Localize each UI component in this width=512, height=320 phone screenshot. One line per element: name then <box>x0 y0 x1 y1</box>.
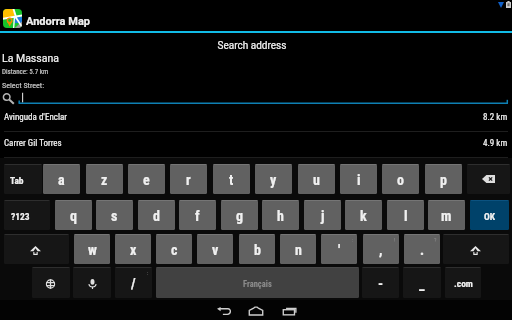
button[interactable]: p <box>425 164 462 194</box>
staticText: Avinguda d'Enclar <box>4 112 68 123</box>
staticText: f <box>195 208 200 224</box>
button[interactable]: u <box>298 164 335 194</box>
button[interactable]: a <box>43 164 80 194</box>
staticText: ! <box>394 236 396 243</box>
staticText: a <box>58 172 65 188</box>
button[interactable]: Carrer Gil Torres <box>0 132 512 158</box>
staticText: Andorra Map <box>26 15 90 28</box>
staticText: La Massana <box>2 52 59 64</box>
button[interactable]: ?123 <box>4 200 50 230</box>
button[interactable]: Shift <box>4 234 69 264</box>
staticText: x <box>130 242 137 258</box>
button[interactable]: Avinguda d'Enclar <box>0 106 512 132</box>
button[interactable]: e <box>128 164 165 194</box>
staticText: p <box>440 172 447 188</box>
staticText: Distance: 5.7 km <box>2 68 49 76</box>
staticText: u <box>313 172 320 188</box>
button[interactable]: f <box>179 200 216 230</box>
button[interactable]: Tab <box>4 164 42 194</box>
button[interactable]: Home <box>240 300 272 320</box>
staticText: c <box>171 242 178 258</box>
button[interactable]: r <box>170 164 207 194</box>
button[interactable]: Search street <box>0 90 512 106</box>
staticText: _ <box>419 276 425 292</box>
button[interactable]: m <box>428 200 465 230</box>
button[interactable]: Voice input <box>73 267 111 298</box>
staticText: , <box>379 242 383 258</box>
staticText: Tab <box>10 175 24 186</box>
button[interactable]: d <box>138 200 175 230</box>
button[interactable]: .com <box>445 267 481 298</box>
button[interactable]: Andorra Map <box>0 0 512 31</box>
button[interactable]: w <box>74 234 110 264</box>
staticText: t <box>229 172 234 188</box>
staticText: e <box>143 172 150 188</box>
button[interactable]: j <box>304 200 341 230</box>
staticText: Carrer Gil Torres <box>4 138 62 149</box>
staticText: . <box>420 242 425 258</box>
staticText: g <box>236 208 244 224</box>
staticText: .com <box>454 278 473 289</box>
staticText: : <box>147 269 149 276</box>
staticText: ' <box>338 242 341 258</box>
staticText: q <box>70 208 77 224</box>
button[interactable]: - <box>362 267 399 298</box>
button[interactable]: Shift <box>443 234 509 264</box>
button[interactable]: g <box>221 200 258 230</box>
staticText: 8.2 km <box>483 112 508 123</box>
staticText: Search address <box>0 40 508 52</box>
button[interactable]: h <box>262 200 299 230</box>
staticText: ?123 <box>11 211 30 222</box>
staticText: s <box>111 208 118 224</box>
button[interactable]: t <box>213 164 250 194</box>
staticText: o <box>397 172 404 188</box>
button[interactable]: c <box>156 234 192 264</box>
staticText: OK <box>484 211 495 222</box>
staticText: d <box>153 208 160 224</box>
button[interactable]: / <box>115 267 152 298</box>
staticText: y <box>270 172 277 188</box>
button[interactable]: x <box>115 234 151 264</box>
button[interactable]: Backspace <box>467 164 510 194</box>
staticText: Select Street: <box>2 81 44 90</box>
staticText: i <box>357 172 361 188</box>
button[interactable]: s <box>96 200 133 230</box>
staticText: v <box>212 242 219 258</box>
staticText: r <box>186 172 191 188</box>
button[interactable]: . <box>404 234 440 264</box>
staticText: : <box>352 236 354 243</box>
button[interactable]: o <box>382 164 419 194</box>
button[interactable]: y <box>255 164 292 194</box>
staticText: m <box>441 208 452 224</box>
staticText: - <box>378 276 384 292</box>
button[interactable]: _ <box>403 267 441 298</box>
button[interactable]: l <box>387 200 424 230</box>
button[interactable]: Back <box>208 300 240 320</box>
staticText: l <box>404 208 408 224</box>
staticText: b <box>254 242 261 258</box>
staticText: k <box>360 208 367 224</box>
staticText: Français <box>243 279 272 289</box>
staticText: j <box>321 208 325 224</box>
button[interactable]: b <box>239 234 275 264</box>
button[interactable]: Français <box>156 267 359 298</box>
button[interactable]: , <box>363 234 399 264</box>
button[interactable]: k <box>345 200 382 230</box>
staticText: n <box>295 242 302 258</box>
button[interactable]: ' <box>321 234 357 264</box>
button[interactable]: i <box>340 164 377 194</box>
button[interactable]: n <box>280 234 316 264</box>
button[interactable]: q <box>55 200 92 230</box>
button[interactable]: Recent apps <box>274 300 306 320</box>
button[interactable]: OK <box>470 200 509 230</box>
staticText: h <box>277 208 284 224</box>
staticText: 4.9 km <box>483 138 508 149</box>
staticText: ? <box>434 236 437 243</box>
staticText: w <box>88 242 97 258</box>
button[interactable]: v <box>197 234 233 264</box>
button[interactable]: Change language <box>32 267 70 298</box>
staticText: / <box>131 276 136 292</box>
staticText: z <box>101 172 108 188</box>
button[interactable]: z <box>86 164 123 194</box>
